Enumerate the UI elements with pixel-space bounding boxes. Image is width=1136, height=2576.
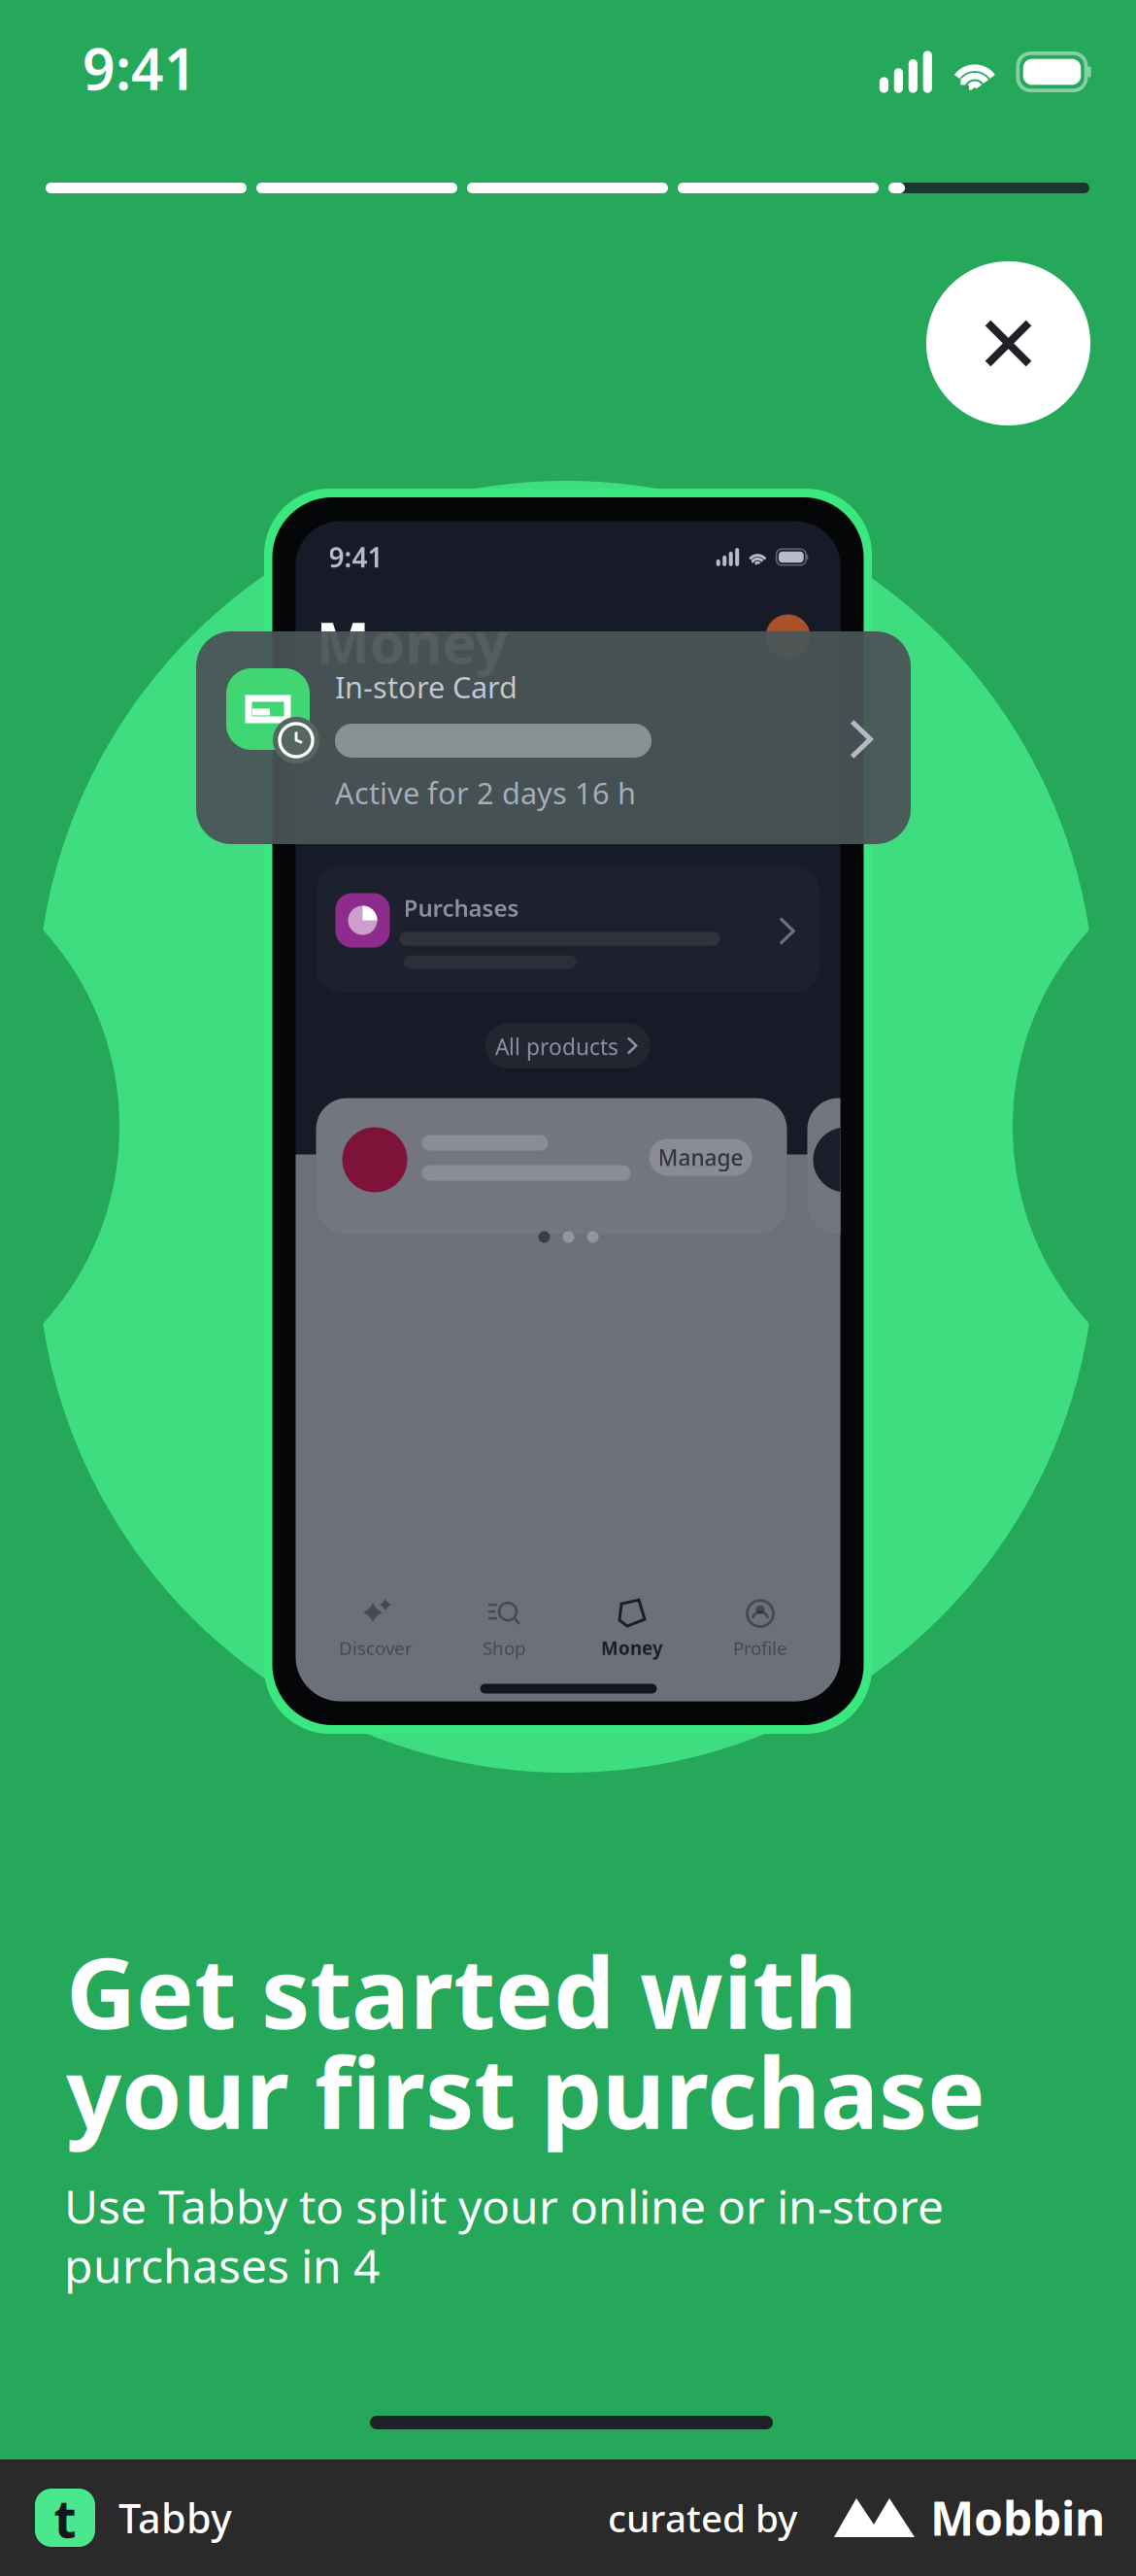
staticText: Profile — [733, 1636, 787, 1660]
staticText: Get started with — [66, 1927, 857, 2056]
staticText: Discover — [339, 1636, 413, 1660]
staticText: Use Tabby to split your online or in-sto… — [64, 2175, 944, 2237]
staticText: Tabby — [118, 2491, 232, 2544]
staticText: 9:41 — [83, 30, 197, 106]
staticText: 9:41 — [329, 539, 383, 575]
button[interactable]: Close — [926, 261, 1090, 425]
staticText: Active for 2 days 16 h — [335, 773, 636, 812]
staticText: t — [54, 2483, 76, 2552]
staticText: Purchases — [403, 892, 519, 923]
staticText: Money — [601, 1636, 663, 1660]
staticText: Shop — [483, 1636, 525, 1660]
staticText: purchases in 4 — [64, 2234, 380, 2296]
staticText: curated by — [608, 2493, 797, 2543]
staticText: your first purchase — [66, 2027, 986, 2156]
staticText: Money — [316, 604, 507, 679]
staticText: Manage — [658, 1143, 743, 1172]
staticText: Mobbin — [930, 2487, 1105, 2549]
staticText: In-store Card — [335, 667, 518, 706]
staticText: All products — [495, 1032, 618, 1061]
